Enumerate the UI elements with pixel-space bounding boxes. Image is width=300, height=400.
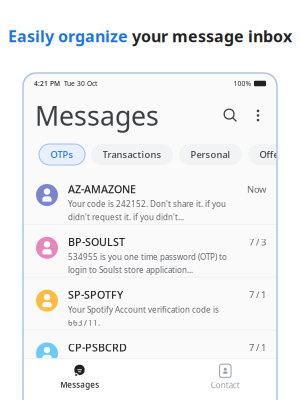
staticText: 7 / 1 [249,341,266,354]
staticText: SP-SPOTFY [68,288,123,302]
staticText: AZ-AMAZONE [68,182,136,196]
button[interactable]: More options [238,108,265,123]
staticText: 663711. [68,317,100,328]
staticText: Here is your one time OTP 494834 to regi… [68,357,241,368]
staticText: BP-SOULST [68,235,125,249]
staticText: login to Soulst store application... [68,265,193,275]
button[interactable]: Offers [248,144,299,165]
button[interactable]: OTPs [39,144,85,165]
staticText: didn't request it. if you didn't... [68,212,184,222]
staticText: 534955 is you one time password (OTP) to [68,251,227,262]
button[interactable]: Messages [60,364,99,390]
staticText: OTPs [50,148,73,161]
staticText: Your Spotify Account verification code i… [68,304,219,315]
staticText: Offers [259,148,287,161]
button[interactable]: Personal [179,144,242,165]
staticText: 7 / 3 [249,236,266,248]
staticText: Contact [211,380,240,390]
staticText: Transactions [102,148,161,161]
button[interactable]: Search [223,108,238,123]
staticText: Easily organize [8,25,128,47]
button[interactable]: Contact [211,364,240,390]
staticText: 100% [233,79,251,88]
staticText: 7 / 1 [249,288,266,301]
button[interactable]: CP-PSBCRD [23,330,277,382]
staticText: Your code is 242152. Don't share it. if … [68,199,226,209]
button[interactable]: SP-SPOTFY [23,278,277,330]
staticText: 4:21 PM [34,79,60,88]
staticText: Personal [190,148,230,161]
button[interactable]: Transactions [91,144,173,165]
staticText: Messages [35,98,159,133]
button[interactable]: AZ-AMAZONE [23,172,277,224]
button[interactable]: BP-SOULST [23,225,277,277]
staticText: CP-PSBCRD [68,340,127,355]
staticText: Now [247,183,266,195]
staticText: Messages [60,379,99,390]
staticText: your message inbox [132,25,292,47]
staticText: Tue 30 Oct [60,79,97,88]
